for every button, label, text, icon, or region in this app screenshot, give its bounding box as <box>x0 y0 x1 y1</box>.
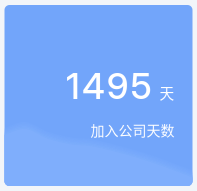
button[interactable]: 1495 <box>4 5 192 186</box>
staticText: 1495 <box>66 64 151 108</box>
staticText: 天 <box>159 82 174 103</box>
staticText: 加入公司天数 <box>90 120 174 140</box>
